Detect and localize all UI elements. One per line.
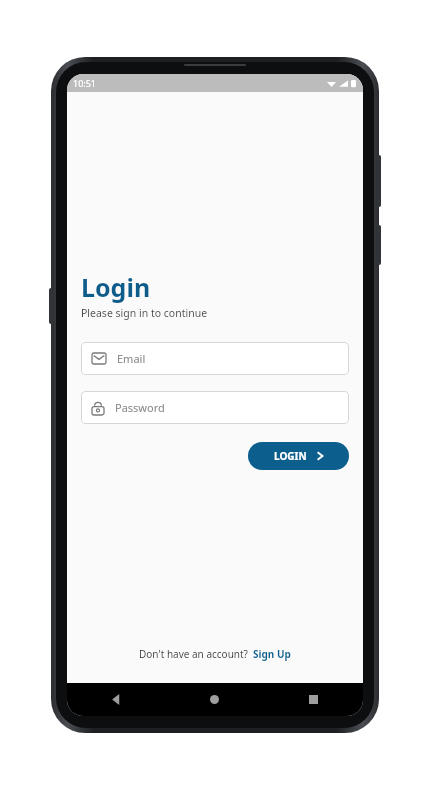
staticText: Login — [81, 270, 151, 304]
button[interactable]: Home — [165, 683, 264, 716]
staticText: 10:51 — [73, 77, 97, 89]
button[interactable]: LOGIN — [248, 442, 349, 470]
staticText: LOGIN — [274, 449, 307, 463]
staticText: Please sign in to continue — [81, 306, 208, 320]
button[interactable]: Password — [81, 391, 349, 424]
staticText: Email — [117, 351, 146, 366]
staticText: Don't have an account? — [139, 647, 248, 661]
staticText: Password — [115, 400, 165, 415]
button[interactable]: Email — [81, 342, 349, 375]
button[interactable]: Back — [67, 683, 165, 716]
button[interactable]: Recent apps — [264, 683, 363, 716]
staticText: Sign Up — [253, 647, 291, 661]
button[interactable]: Sign Up — [253, 647, 291, 661]
